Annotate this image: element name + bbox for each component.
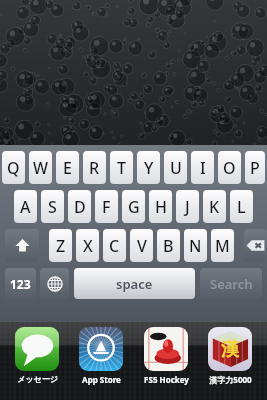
button[interactable]: M [211,229,234,262]
staticText: P [250,157,260,179]
staticText: App Store [82,374,121,385]
button[interactable]: W [29,151,52,184]
button[interactable]: H [149,190,172,223]
staticText: Q [7,157,20,179]
staticText: R [89,157,100,179]
button[interactable]: App Store [70,327,132,385]
button[interactable]: C [103,229,126,262]
staticText: L [237,196,246,218]
button[interactable]: 123 [5,268,36,299]
button[interactable]: U [164,151,187,184]
staticText: H [155,196,167,218]
button[interactable]: Change keyboard [40,268,69,299]
button[interactable]: T [110,151,133,184]
button[interactable]: Y [137,151,160,184]
staticText: Z [56,235,66,257]
button[interactable]: S [41,190,64,223]
staticText: A [20,196,31,218]
button[interactable]: L [230,190,253,223]
staticText: 123 [10,276,31,292]
button[interactable]: Delete [244,229,267,262]
button[interactable]: R [83,151,106,184]
button[interactable]: B [157,229,180,262]
button[interactable]: FS5 Hockey [135,327,197,385]
staticText: X [83,235,93,257]
staticText: 漢 [221,338,239,361]
staticText: I [200,157,206,179]
staticText: C [109,235,120,257]
button[interactable]: Shift [5,229,39,262]
button[interactable]: X [76,229,99,262]
staticText: E [63,157,72,179]
button[interactable]: F [95,190,118,223]
staticText: FS5 Hockey [144,374,189,385]
button[interactable]: space [74,268,195,299]
staticText: U [170,157,182,179]
button[interactable]: 漢 [199,327,261,385]
staticText: 漢字力5000 [209,374,252,385]
button[interactable]: E [56,151,79,184]
button[interactable]: P [245,151,265,184]
staticText: space [116,275,153,293]
button[interactable]: G [122,190,145,223]
staticText: D [74,196,86,218]
staticText: Search [210,275,253,293]
button[interactable]: Search [200,268,262,299]
button[interactable]: I [191,151,214,184]
staticText: G [128,196,140,218]
staticText: B [163,235,174,257]
button[interactable]: A [14,190,37,223]
staticText: J [185,196,190,218]
staticText: Y [144,157,154,179]
staticText: T [117,157,126,179]
button[interactable]: N [184,229,207,262]
staticText: M [215,235,230,257]
button[interactable]: Z [49,229,72,262]
button[interactable]: D [68,190,91,223]
staticText: K [209,196,220,218]
button[interactable]: K [203,190,226,223]
staticText: V [137,235,147,257]
staticText: メッセージ [17,374,58,384]
button[interactable]: J [176,190,199,223]
staticText: N [189,235,202,257]
button[interactable]: O [218,151,241,184]
staticText: O [223,157,236,179]
button[interactable]: V [130,229,153,262]
staticText: S [48,196,57,218]
staticText: W [33,157,49,179]
button[interactable]: メッセージ [6,327,68,384]
staticText: F [102,196,111,218]
button[interactable]: Q [2,151,25,184]
